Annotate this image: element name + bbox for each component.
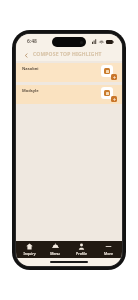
button[interactable]: Add [111, 74, 117, 80]
button[interactable]: Menu [42, 241, 68, 258]
button[interactable]: Modsyle [16, 85, 122, 104]
staticText: Profile [76, 251, 87, 256]
button[interactable]: Item image [101, 87, 113, 99]
button[interactable]: Profile [68, 241, 95, 258]
button[interactable]: Add [111, 96, 117, 102]
staticText: More [104, 251, 113, 256]
button[interactable]: Back [21, 50, 31, 60]
button[interactable]: Inquiry [16, 241, 42, 258]
staticText: 6:48 [27, 38, 37, 45]
staticText: Inquiry [23, 251, 36, 256]
button[interactable]: More [95, 241, 122, 258]
staticText: Modsyle [22, 88, 39, 93]
staticText: Menu [50, 251, 60, 256]
button[interactable]: Item image [101, 65, 113, 77]
button[interactable]: Nasobni [16, 63, 122, 82]
staticText: Nasobni [22, 66, 39, 71]
staticText: COMPOSE TOP HIGHLIGHT [33, 51, 117, 58]
